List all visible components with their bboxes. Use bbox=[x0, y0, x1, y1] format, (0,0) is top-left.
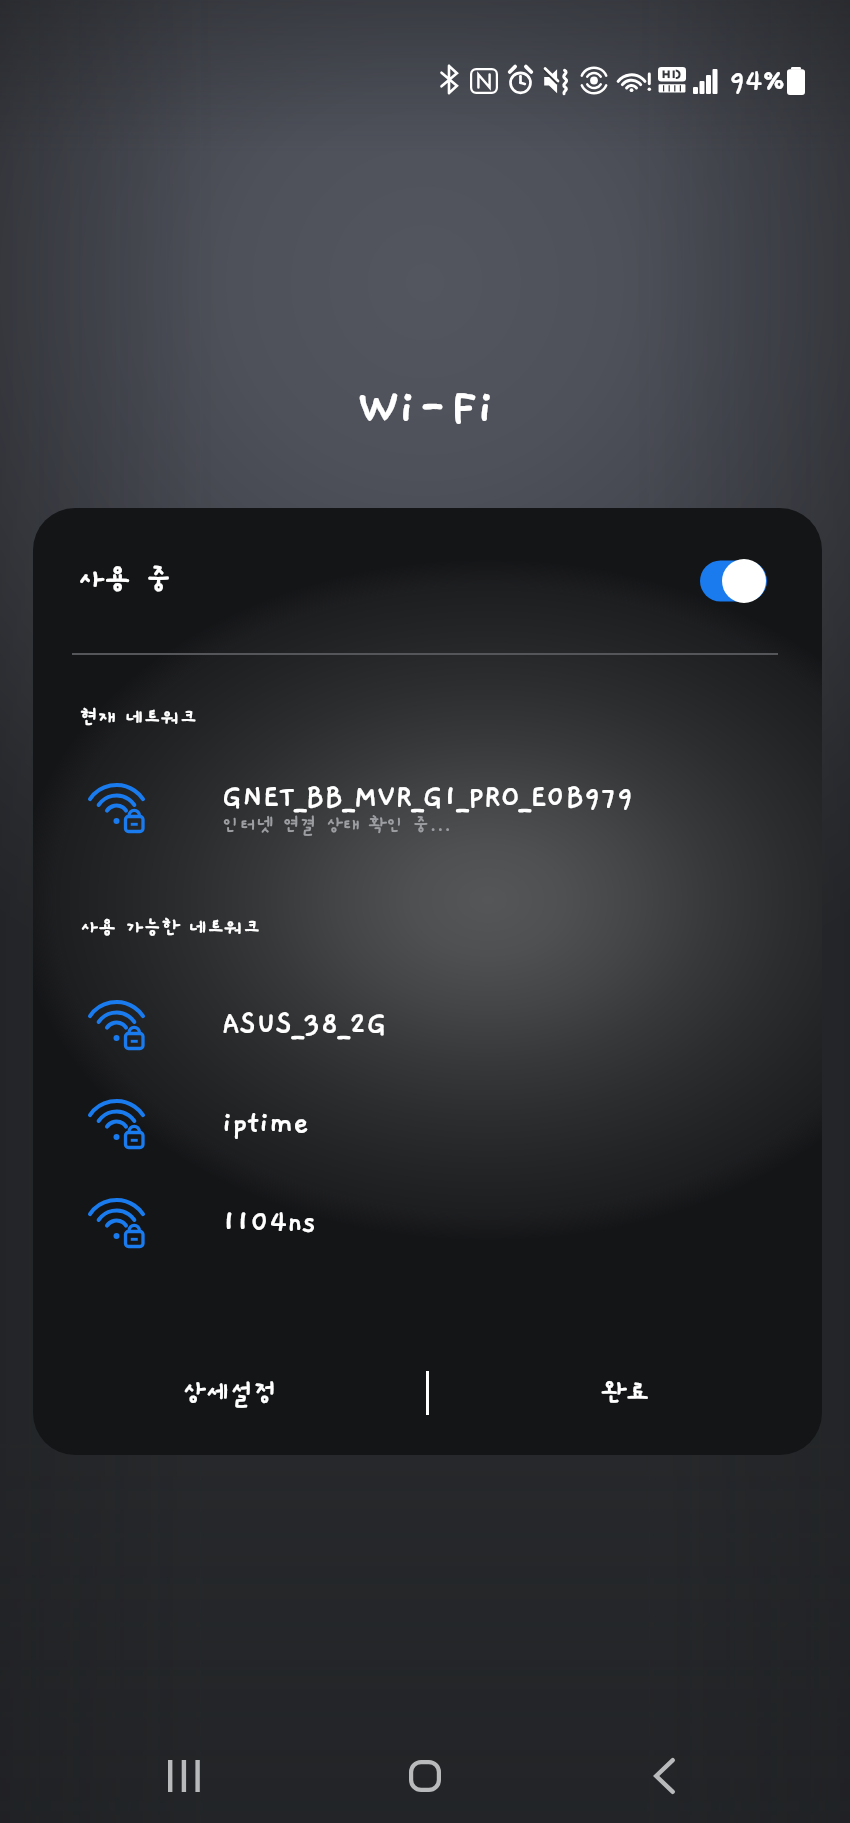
button[interactable]: Back bbox=[589, 1722, 734, 1823]
staticText: 사용 중 bbox=[77, 564, 173, 597]
staticText: 현재 네트워크 bbox=[80, 707, 198, 729]
staticText: ASUS_38_2G bbox=[222, 1008, 387, 1041]
staticText: 완료 bbox=[602, 1379, 650, 1408]
staticText: 사용 가능한 네트워크 bbox=[80, 917, 261, 939]
staticText: 인터넷 연결 상태 확인 중... bbox=[222, 815, 452, 836]
button[interactable]: 완료 bbox=[429, 1347, 822, 1439]
button[interactable]: 1104ns bbox=[33, 1173, 822, 1272]
button[interactable]: Recent apps bbox=[113, 1722, 258, 1823]
staticText: 94% bbox=[729, 65, 785, 98]
button[interactable]: 상세설정 bbox=[33, 1347, 426, 1439]
button[interactable]: Home bbox=[352, 1722, 497, 1823]
button[interactable]: iptime bbox=[33, 1074, 822, 1173]
button[interactable]: GNET_BB_MVR_G1_PRO_E0B979 bbox=[33, 758, 822, 857]
staticText: iptime bbox=[222, 1107, 310, 1140]
staticText: 상세설정 bbox=[182, 1379, 278, 1408]
button[interactable]: Wi-Fi on bbox=[700, 557, 770, 605]
staticText: Wi-Fi bbox=[357, 380, 494, 435]
button[interactable]: ASUS_38_2G bbox=[33, 975, 822, 1074]
staticText: GNET_BB_MVR_G1_PRO_E0B979 bbox=[222, 781, 634, 814]
staticText: 1104ns bbox=[222, 1206, 317, 1239]
